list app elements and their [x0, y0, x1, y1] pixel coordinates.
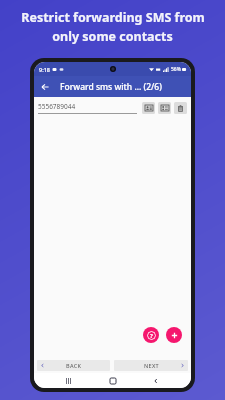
button[interactable]: BACK [37, 360, 110, 371]
button[interactable]: Home [105, 373, 121, 388]
button[interactable]: Back [37, 79, 53, 95]
staticText: 9:18 [39, 66, 50, 73]
button[interactable]: Delete [174, 102, 187, 114]
staticText: Forward sms with ... (2/6) [60, 81, 162, 93]
button[interactable]: Back [148, 373, 164, 388]
staticText: 56% [171, 66, 181, 73]
staticText: NEXT [144, 362, 159, 369]
staticText: 5556789044 [38, 102, 76, 111]
button[interactable]: Select contact [142, 102, 155, 114]
button[interactable]: Recent apps [61, 373, 77, 388]
button[interactable]: NEXT [114, 360, 188, 371]
button[interactable]: 5556789044 [38, 102, 137, 114]
staticText: BACK [66, 362, 82, 369]
staticText: ? [150, 332, 153, 340]
button[interactable]: Add contact [166, 327, 182, 343]
staticText: only some contacts [52, 28, 173, 45]
button[interactable]: Contact groups [158, 102, 171, 114]
button[interactable]: Help [143, 327, 159, 343]
staticText: Restrict forwarding SMS from [21, 9, 205, 26]
